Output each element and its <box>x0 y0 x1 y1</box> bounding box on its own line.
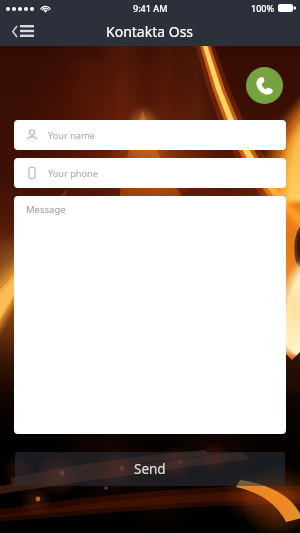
button[interactable]: Send <box>15 452 285 486</box>
button[interactable]: Call <box>246 67 283 104</box>
button[interactable]: Message <box>14 196 286 434</box>
button[interactable]: Your phone <box>14 158 286 188</box>
button[interactable]: Menu <box>8 19 38 43</box>
staticText: Message <box>26 203 66 216</box>
staticText: 100% <box>251 2 275 14</box>
staticText: Send <box>134 460 166 478</box>
button[interactable]: Your name <box>14 120 286 150</box>
staticText: Your name <box>48 129 95 142</box>
staticText: Your phone <box>48 167 98 180</box>
staticText: Kontakta Oss <box>106 22 194 41</box>
staticText: 9:41 AM <box>133 2 168 14</box>
